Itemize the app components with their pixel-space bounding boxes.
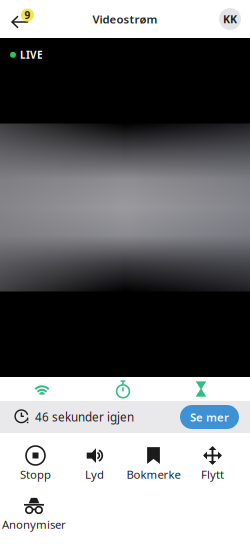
staticText: Stopp — [20, 467, 51, 482]
button[interactable]: Se mer — [180, 405, 239, 429]
button[interactable]: Timer — [84, 377, 162, 401]
button[interactable]: Remaining time — [162, 377, 240, 401]
staticText: KK — [223, 12, 237, 26]
staticText: Flytt — [201, 467, 224, 482]
staticText: Videostrøm — [92, 11, 157, 27]
button[interactable]: Profile — [219, 8, 241, 30]
staticText: Bokmerke — [126, 467, 180, 482]
button[interactable]: Back — [7, 5, 38, 33]
button[interactable]: Stopp — [6, 445, 65, 482]
staticText: LIVE — [20, 48, 43, 62]
staticText: Anonymiser — [2, 517, 66, 532]
button[interactable]: Bokmerke — [124, 445, 183, 482]
staticText: Se mer — [190, 409, 229, 425]
staticText: 9 — [24, 8, 30, 22]
button[interactable]: Lyd — [65, 445, 124, 482]
button[interactable]: Network status — [0, 377, 84, 401]
staticText: 46 sekunder igjen — [35, 409, 134, 425]
button[interactable]: Anonymiser — [1, 495, 67, 532]
staticText: Lyd — [85, 467, 104, 482]
button[interactable]: Flytt — [183, 445, 242, 482]
